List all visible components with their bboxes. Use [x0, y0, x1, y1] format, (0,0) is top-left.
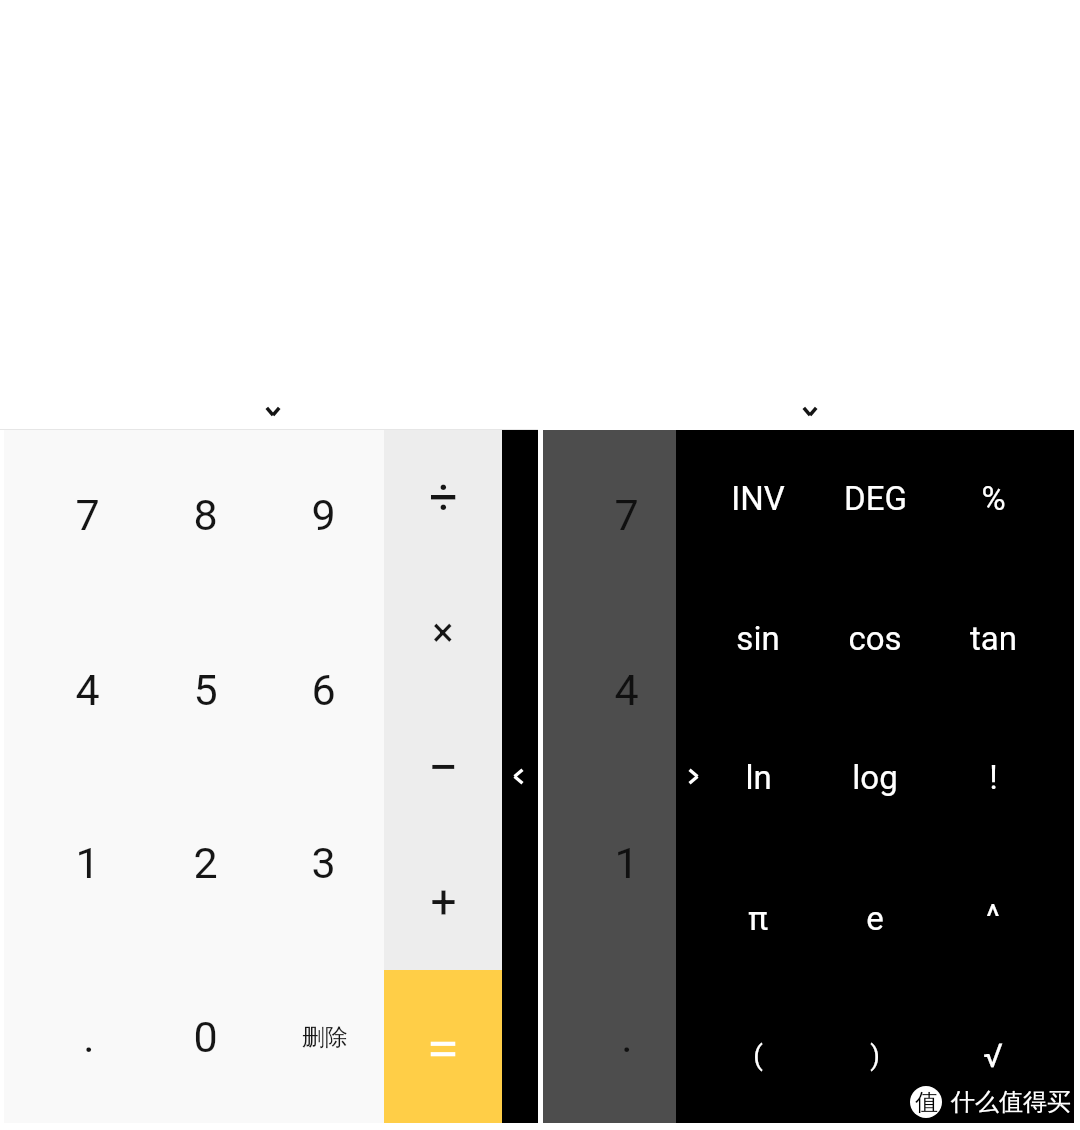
- button[interactable]: 3: [264, 811, 382, 915]
- staticText: 5: [193, 665, 218, 715]
- button[interactable]: 7: [567, 463, 685, 567]
- button[interactable]: 5: [146, 638, 264, 742]
- button[interactable]: ^: [934, 864, 1052, 968]
- staticText: log: [852, 758, 898, 797]
- button[interactable]: sin: [699, 586, 817, 690]
- button[interactable]: 4: [28, 638, 146, 742]
- staticText: 1: [75, 838, 100, 888]
- staticText: 9: [311, 490, 336, 540]
- button[interactable]: 7: [28, 463, 146, 567]
- button[interactable]: e: [816, 866, 934, 970]
- staticText: 删除: [302, 1023, 348, 1052]
- button[interactable]: Next screen: [680, 760, 707, 793]
- staticText: tan: [970, 619, 1017, 658]
- staticText: 6: [311, 665, 336, 715]
- staticText: 1: [614, 838, 639, 888]
- button[interactable]: .: [30, 985, 148, 1089]
- button[interactable]: 1: [28, 811, 146, 915]
- staticText: 4: [75, 665, 100, 715]
- staticText: cos: [848, 619, 902, 658]
- staticText: 7: [75, 490, 100, 540]
- button[interactable]: π: [699, 866, 817, 970]
- button[interactable]: tan: [934, 586, 1052, 690]
- button[interactable]: +: [384, 850, 502, 954]
- button[interactable]: Collapse keypad: [257, 398, 289, 425]
- button[interactable]: Collapse keypad: [794, 398, 826, 425]
- staticText: √: [983, 1036, 1003, 1075]
- button[interactable]: ln: [699, 725, 817, 829]
- staticText: .: [621, 1012, 633, 1062]
- button[interactable]: (: [699, 1003, 817, 1107]
- button[interactable]: −: [384, 715, 502, 819]
- button[interactable]: %: [934, 446, 1052, 550]
- staticText: .: [83, 1012, 95, 1062]
- button[interactable]: 2: [146, 811, 264, 915]
- button[interactable]: INV: [699, 446, 817, 550]
- staticText: ÷: [429, 468, 458, 527]
- staticText: %: [981, 479, 1006, 518]
- button[interactable]: ×: [384, 580, 502, 684]
- staticText: +: [430, 875, 457, 929]
- staticText: e: [866, 899, 884, 938]
- button[interactable]: .: [568, 985, 686, 1089]
- staticText: 4: [614, 665, 639, 715]
- staticText: π: [748, 899, 768, 938]
- button[interactable]: log: [816, 725, 934, 829]
- staticText: −: [428, 736, 459, 799]
- staticText: (: [753, 1039, 763, 1072]
- button[interactable]: DEG: [816, 446, 934, 550]
- staticText: ): [870, 1039, 880, 1072]
- button[interactable]: 0: [146, 985, 264, 1089]
- staticText: 3: [311, 838, 336, 888]
- button[interactable]: ): [816, 1003, 934, 1107]
- button[interactable]: 1: [567, 811, 685, 915]
- staticText: ln: [745, 758, 772, 797]
- staticText: sin: [736, 619, 780, 658]
- button[interactable]: !: [934, 725, 1052, 829]
- staticText: 8: [193, 490, 218, 540]
- button[interactable]: 4: [567, 638, 685, 742]
- staticText: 值: [915, 1088, 938, 1117]
- staticText: 7: [614, 490, 639, 540]
- staticText: 什么值得买: [951, 1087, 1071, 1117]
- staticText: !: [989, 758, 998, 797]
- staticText: ×: [432, 609, 454, 656]
- button[interactable]: ÷: [384, 445, 502, 549]
- staticText: 2: [193, 838, 218, 888]
- button[interactable]: Equals: [384, 970, 502, 1123]
- staticText: ^: [986, 897, 1000, 936]
- staticText: 0: [193, 1012, 218, 1062]
- button[interactable]: 9: [264, 463, 382, 567]
- button[interactable]: Previous screen: [505, 760, 532, 793]
- button[interactable]: 删除: [266, 985, 384, 1089]
- staticText: DEG: [844, 479, 907, 518]
- staticText: INV: [731, 479, 785, 518]
- button[interactable]: 8: [146, 463, 264, 567]
- button[interactable]: cos: [816, 586, 934, 690]
- button[interactable]: √: [934, 1003, 1052, 1107]
- button[interactable]: 6: [264, 638, 382, 742]
